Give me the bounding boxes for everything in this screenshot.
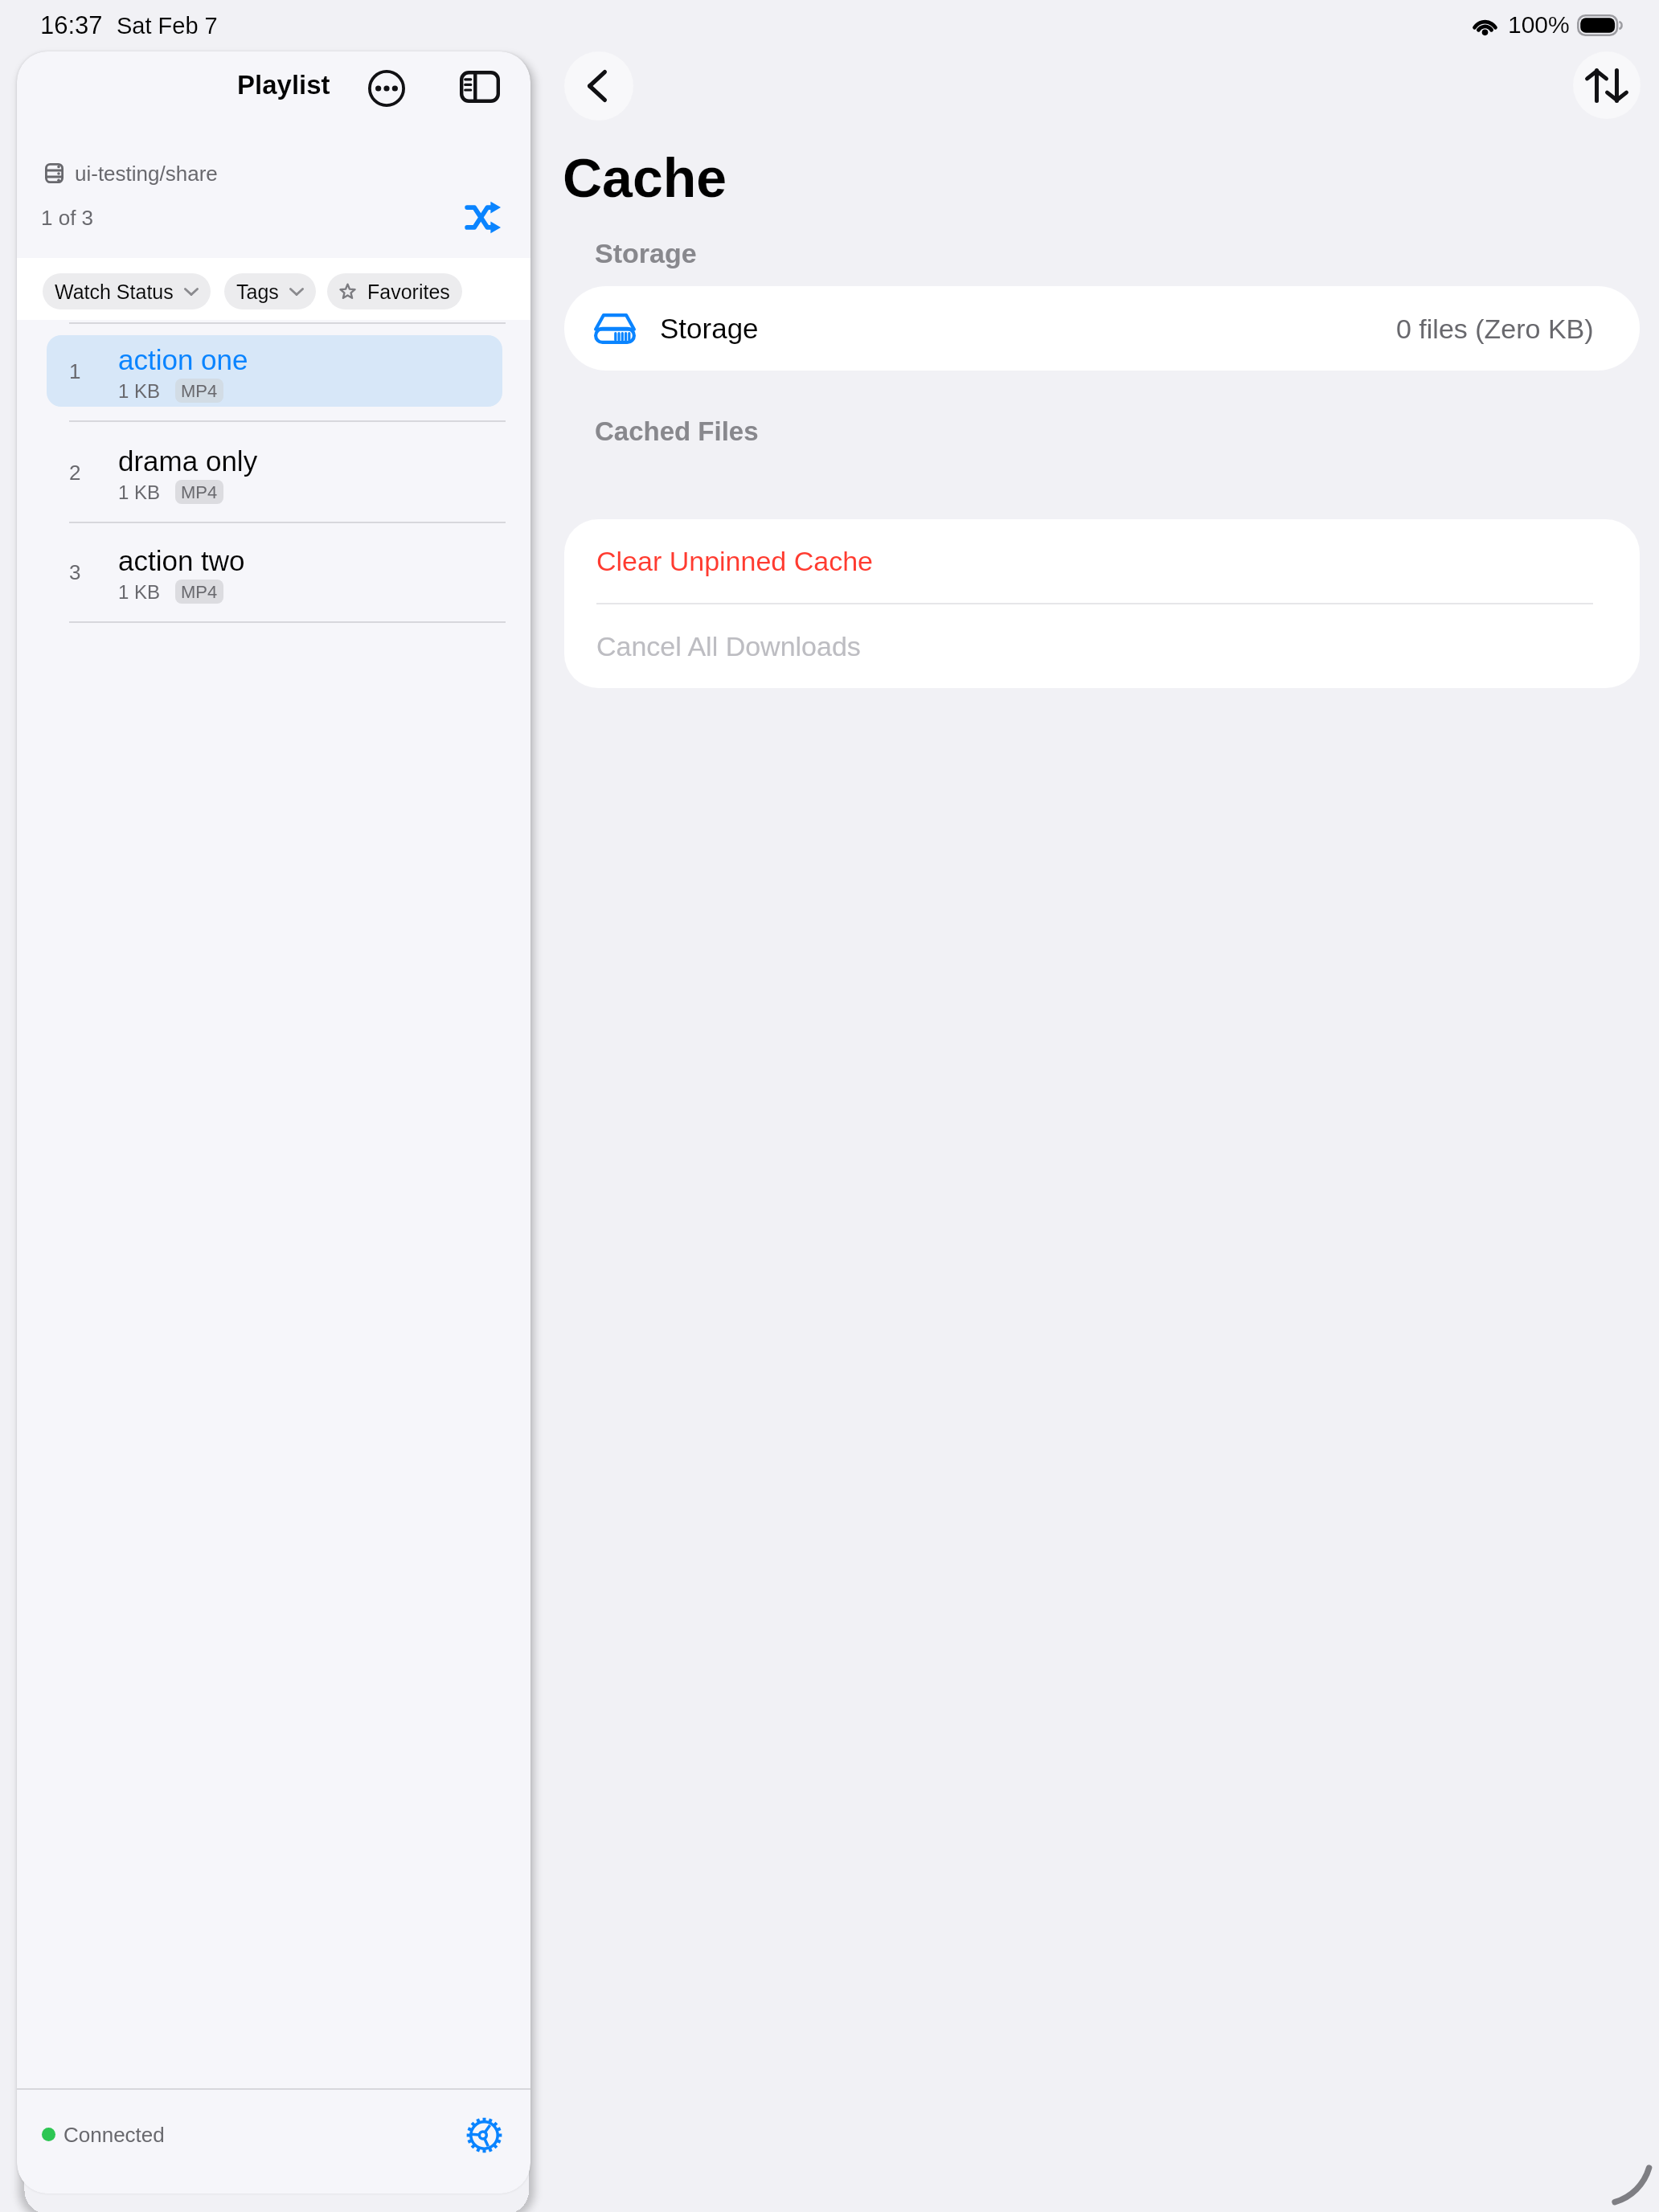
staticText: Watch Status (55, 281, 174, 303)
staticText: Storage (595, 238, 697, 268)
staticText: 1 of 3 (41, 206, 94, 229)
staticText: 0 files (Zero KB) (1396, 313, 1594, 344)
staticText: 3 (69, 560, 81, 584)
staticText: Playlist (237, 70, 330, 100)
staticText: 1 KB (118, 481, 161, 503)
button[interactable]: Tags (224, 273, 316, 309)
button[interactable]: More options (354, 56, 419, 121)
staticText: action two (118, 545, 245, 576)
staticText: MP4 (181, 381, 218, 401)
staticText: 1 KB (118, 581, 161, 603)
button[interactable]: Sort (1573, 51, 1641, 119)
button[interactable]: Toggle sidebar (448, 55, 512, 119)
staticText: MP4 (181, 582, 218, 602)
button[interactable]: 1 (47, 335, 502, 407)
staticText: Tags (236, 281, 279, 303)
staticText: Cached Files (595, 416, 759, 446)
button[interactable]: Cancel All Downloads (564, 604, 1640, 688)
staticText: Cancel All Downloads (596, 631, 861, 662)
button[interactable]: Shuffle (456, 190, 509, 244)
button[interactable]: Storage (564, 286, 1640, 371)
button[interactable]: Clear Unpinned Cache (564, 519, 1640, 603)
button[interactable]: Back (564, 51, 633, 121)
staticText: Storage (660, 313, 759, 344)
button[interactable]: Favorites (327, 273, 462, 309)
staticText: Favorites (367, 281, 450, 303)
staticText: MP4 (181, 482, 218, 502)
staticText: Cache (563, 147, 727, 208)
staticText: drama only (118, 445, 258, 477)
staticText: Connected (63, 2123, 165, 2146)
staticText: action one (118, 344, 248, 375)
button[interactable]: 2 (47, 436, 502, 508)
button[interactable]: Watch Status (43, 273, 211, 309)
staticText: Sat Feb 7 (117, 13, 218, 39)
staticText: 100% (1508, 11, 1570, 39)
staticText: ui-testing/share (75, 162, 218, 185)
staticText: 2 (69, 461, 81, 484)
staticText: 16:37 (40, 11, 103, 39)
button[interactable]: 3 (47, 536, 502, 608)
staticText: Clear Unpinned Cache (596, 546, 873, 576)
button[interactable]: Settings (459, 2110, 509, 2160)
staticText: 1 (69, 359, 81, 383)
staticText: 1 KB (118, 380, 161, 402)
